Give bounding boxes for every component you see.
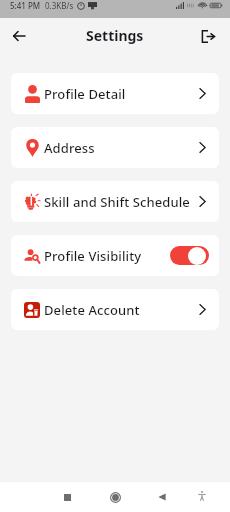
button[interactable]: Profile visibility toggle <box>170 246 209 265</box>
button[interactable]: Home <box>104 486 126 508</box>
button[interactable]: Back <box>6 23 32 49</box>
button[interactable]: Recent apps <box>56 486 78 508</box>
button[interactable]: Delete Account <box>11 289 219 330</box>
staticText: Delete Account <box>44 301 140 319</box>
staticText: 5:41 PM <box>10 0 41 11</box>
button[interactable]: Profile Detail <box>11 73 219 114</box>
button[interactable]: Back <box>151 486 173 508</box>
staticText: Skill and Shift Schedule <box>44 193 190 211</box>
staticText: 0.3KB/s <box>45 0 74 11</box>
staticText: Profile Visibility <box>44 247 142 265</box>
button[interactable]: Skill and Shift Schedule <box>11 181 219 222</box>
staticText: Address <box>44 139 95 157</box>
button[interactable]: Address <box>11 127 219 168</box>
button[interactable]: Logout <box>195 23 221 49</box>
staticText: Settings <box>86 26 144 45</box>
button[interactable]: Accessibility <box>191 485 213 507</box>
button[interactable]: Profile Visibility <box>11 235 219 276</box>
staticText: Profile Detail <box>44 85 126 103</box>
